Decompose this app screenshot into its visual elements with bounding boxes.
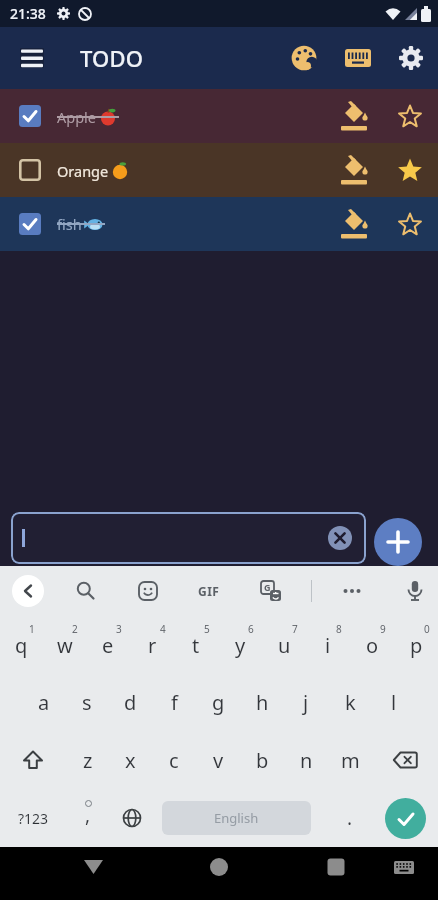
staticText: f xyxy=(171,689,178,716)
staticText: 8 xyxy=(336,622,342,636)
button[interactable] xyxy=(374,518,422,566)
staticText: s xyxy=(82,689,92,716)
staticText: 0 xyxy=(424,622,430,636)
button[interactable]: English xyxy=(162,801,311,835)
button[interactable] xyxy=(382,847,426,887)
button[interactable]: i xyxy=(306,616,350,674)
button[interactable]: s xyxy=(65,674,108,731)
button[interactable] xyxy=(126,569,170,613)
button[interactable] xyxy=(19,159,41,181)
staticText: d xyxy=(124,689,137,716)
staticText: 4 xyxy=(160,622,166,636)
button[interactable]: u xyxy=(262,616,306,674)
button[interactable] xyxy=(71,847,115,887)
button[interactable]: p xyxy=(394,616,438,674)
staticText: n xyxy=(300,747,313,774)
button[interactable]: GIF xyxy=(187,569,231,613)
button[interactable]: h xyxy=(240,674,284,731)
button[interactable] xyxy=(314,847,358,887)
button[interactable]: ?123 xyxy=(0,789,66,847)
staticText: q xyxy=(15,632,28,659)
button[interactable]: r xyxy=(130,616,174,674)
button[interactable]: v xyxy=(196,731,240,789)
staticText: 6 xyxy=(248,622,254,636)
button[interactable]: m xyxy=(328,731,372,789)
button[interactable] xyxy=(330,569,374,613)
button[interactable]: f xyxy=(152,674,196,731)
button[interactable]: b xyxy=(240,731,284,789)
staticText: 1 xyxy=(29,622,35,636)
button[interactable]: G xyxy=(249,569,293,613)
staticText: ?123 xyxy=(18,809,49,828)
button[interactable] xyxy=(6,569,50,613)
staticText: m xyxy=(341,747,360,774)
button[interactable]: fish xyxy=(0,197,438,251)
button[interactable]: n xyxy=(284,731,328,789)
button[interactable]: g xyxy=(196,674,240,731)
staticText: b xyxy=(256,747,269,774)
button[interactable] xyxy=(328,526,352,550)
button[interactable]: l xyxy=(372,674,416,731)
button[interactable] xyxy=(393,569,437,613)
button[interactable] xyxy=(333,202,377,246)
button[interactable] xyxy=(336,36,380,80)
button[interactable] xyxy=(388,148,432,192)
button[interactable] xyxy=(110,789,154,847)
button[interactable]: x xyxy=(109,731,152,789)
staticText: fish xyxy=(57,214,82,234)
staticText: English xyxy=(214,809,259,827)
staticText: Apple xyxy=(57,107,97,127)
button[interactable] xyxy=(19,105,41,127)
button[interactable]: y xyxy=(218,616,262,674)
staticText: 21:38 xyxy=(10,4,46,23)
staticText: p xyxy=(410,632,423,659)
button[interactable] xyxy=(11,512,366,564)
button[interactable]: k xyxy=(328,674,372,731)
button[interactable]: e xyxy=(86,616,130,674)
button[interactable] xyxy=(372,731,438,789)
staticText: r xyxy=(148,632,157,659)
button[interactable]: a xyxy=(22,674,65,731)
staticText: , xyxy=(85,802,91,828)
staticText: x xyxy=(125,747,136,774)
staticText: t xyxy=(192,632,200,659)
button[interactable] xyxy=(385,798,426,839)
button[interactable]: Apple xyxy=(0,89,438,143)
button[interactable]: q xyxy=(0,616,43,674)
button[interactable] xyxy=(197,847,241,887)
staticText: o xyxy=(366,632,379,659)
staticText: w xyxy=(57,632,73,659)
button[interactable]: w xyxy=(43,616,86,674)
button[interactable] xyxy=(282,36,326,80)
button[interactable]: d xyxy=(108,674,152,731)
staticText: c xyxy=(169,747,179,774)
button[interactable]: o xyxy=(350,616,394,674)
staticText: . xyxy=(347,805,353,831)
staticText: k xyxy=(345,689,356,716)
staticText: l xyxy=(391,689,397,716)
staticText: y xyxy=(235,632,246,659)
button[interactable]: z xyxy=(66,731,109,789)
button[interactable] xyxy=(12,38,52,78)
button[interactable]: Orange xyxy=(0,143,438,197)
staticText: 2 xyxy=(72,622,78,636)
button[interactable] xyxy=(388,94,432,138)
staticText: j xyxy=(303,689,309,716)
staticText: 7 xyxy=(292,622,298,636)
button[interactable]: c xyxy=(152,731,196,789)
button[interactable]: j xyxy=(284,674,328,731)
staticText: u xyxy=(278,632,291,659)
staticText: 9 xyxy=(380,622,386,636)
button[interactable] xyxy=(64,569,108,613)
staticText: h xyxy=(256,689,269,716)
button[interactable]: . xyxy=(328,789,372,847)
staticText: g xyxy=(212,689,225,716)
button[interactable]: t xyxy=(174,616,218,674)
button[interactable] xyxy=(389,36,433,80)
button[interactable] xyxy=(19,213,41,235)
button[interactable]: , xyxy=(66,789,110,847)
button[interactable] xyxy=(388,202,432,246)
button[interactable] xyxy=(333,148,377,192)
button[interactable] xyxy=(0,731,66,789)
button[interactable] xyxy=(333,94,377,138)
